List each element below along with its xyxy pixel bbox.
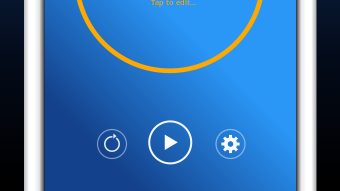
button[interactable]: Settings: [216, 129, 245, 158]
staticText: Tap to edit...: [150, 0, 195, 7]
button[interactable]: Play: [149, 121, 191, 163]
button[interactable]: Reset: [97, 129, 126, 158]
